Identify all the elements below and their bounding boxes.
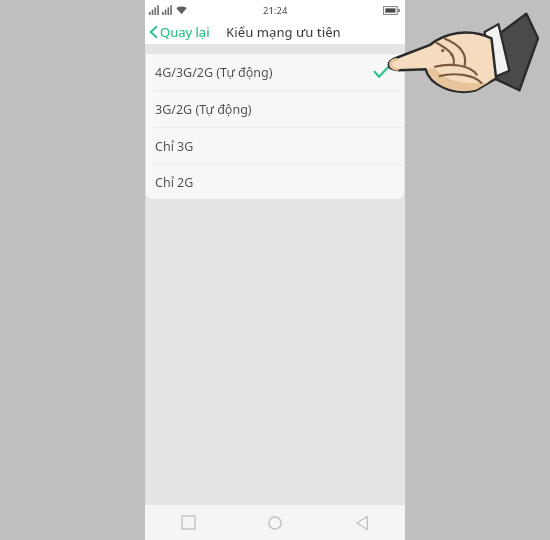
button[interactable]: Back bbox=[318, 505, 405, 540]
staticText: 21:24 bbox=[263, 4, 288, 17]
staticText: Quay lại bbox=[160, 23, 210, 41]
button[interactable]: Chỉ 3G bbox=[146, 128, 404, 165]
staticText: Chỉ 3G bbox=[155, 138, 194, 155]
button[interactable]: 3G/2G (Tự động) bbox=[146, 91, 404, 128]
button[interactable]: Recent apps bbox=[145, 505, 231, 540]
button[interactable]: Quay lại bbox=[145, 21, 216, 43]
button[interactable]: Chỉ 2G bbox=[146, 165, 404, 199]
staticText: 3G/2G (Tự động) bbox=[155, 101, 252, 118]
staticText: Kiểu mạng ưu tiên bbox=[226, 23, 341, 41]
staticText: Chỉ 2G bbox=[155, 174, 194, 191]
button[interactable]: Home bbox=[231, 505, 318, 540]
staticText: 4G/3G/2G (Tự động) bbox=[155, 64, 273, 81]
button[interactable]: 4G/3G/2G (Tự động) bbox=[146, 54, 404, 91]
